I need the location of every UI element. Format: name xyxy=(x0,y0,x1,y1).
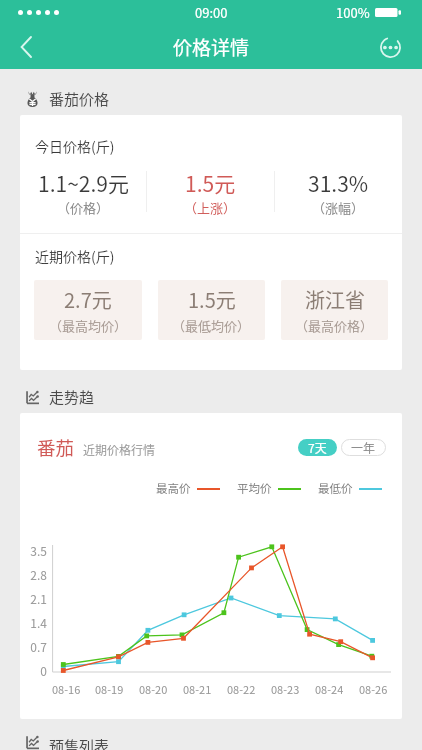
staticText: 走势趋 xyxy=(49,386,95,408)
button[interactable]: 最低价 xyxy=(318,480,382,497)
staticText: （最高均价） xyxy=(49,316,128,335)
staticText: 08-19 xyxy=(95,681,124,697)
button[interactable]: 2.7元 xyxy=(34,280,142,340)
staticText: 3.5 xyxy=(30,542,47,559)
staticText: 2.1 xyxy=(30,590,47,607)
staticText: 预售列表 xyxy=(49,735,110,750)
staticText: 7天 xyxy=(308,439,327,456)
button[interactable]: 31.3% xyxy=(275,168,402,221)
staticText: （最高价格） xyxy=(295,316,374,335)
staticText: 近期价格(斤) xyxy=(35,246,115,266)
staticText: 价格详情 xyxy=(173,33,250,61)
button[interactable]: 1.5元 xyxy=(158,280,265,340)
button[interactable]: 7天 xyxy=(298,439,337,456)
button[interactable]: 浙江省 xyxy=(281,280,388,340)
staticText: 1.5元 xyxy=(188,285,236,314)
staticText: 平均价 xyxy=(237,480,272,497)
staticText: 近期价格行情 xyxy=(83,441,156,458)
staticText: 一年 xyxy=(351,439,376,456)
staticText: 1.4 xyxy=(30,614,47,631)
staticText: 0.7 xyxy=(30,638,47,655)
staticText: 08-22 xyxy=(227,681,256,697)
button[interactable]: 1.1~2.9元 xyxy=(20,168,146,221)
staticText: （上涨） xyxy=(184,198,237,217)
staticText: （价格） xyxy=(57,198,110,217)
staticText: 08-24 xyxy=(315,681,344,697)
staticText: 31.3% xyxy=(308,168,369,198)
staticText: 今日价格(斤) xyxy=(35,136,115,156)
staticText: 2.7元 xyxy=(64,285,112,314)
staticText: 浙江省 xyxy=(305,285,365,314)
staticText: 08-16 xyxy=(52,681,81,697)
staticText: 08-23 xyxy=(271,681,300,697)
button[interactable]: 最高价 xyxy=(156,480,220,497)
staticText: 1.5元 xyxy=(185,168,236,198)
staticText: 08-21 xyxy=(183,681,212,697)
staticText: 最低价 xyxy=(318,480,353,497)
button[interactable]: 平均价 xyxy=(237,480,301,497)
button[interactable]: 1.5元 xyxy=(147,168,274,221)
staticText: 番茄价格 xyxy=(49,88,110,110)
staticText: （涨幅） xyxy=(312,198,365,217)
button[interactable]: 一年 xyxy=(341,439,386,456)
button[interactable]: Back xyxy=(0,25,46,69)
staticText: 08-26 xyxy=(359,681,388,697)
staticText: 100% xyxy=(336,3,370,22)
staticText: 09:00 xyxy=(195,3,228,22)
staticText: 0 xyxy=(40,662,47,679)
staticText: 08-20 xyxy=(139,681,168,697)
staticText: （最低均价） xyxy=(172,316,251,335)
button[interactable]: More options xyxy=(380,25,422,69)
staticText: 番茄 xyxy=(37,434,75,461)
staticText: 1.1~2.9元 xyxy=(38,168,129,198)
staticText: 2.8 xyxy=(30,566,47,583)
staticText: 最高价 xyxy=(156,480,191,497)
